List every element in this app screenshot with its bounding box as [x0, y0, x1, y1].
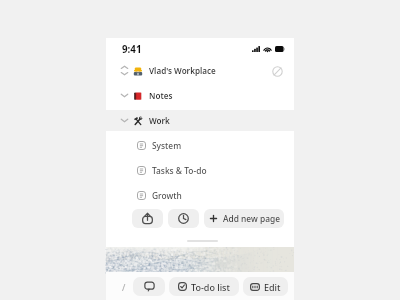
- staticText: 9:41: [122, 43, 142, 56]
- button[interactable]: History: [168, 209, 199, 228]
- staticText: System: [152, 140, 182, 151]
- staticText: Tasks & To-do: [152, 165, 207, 176]
- staticText: Vlad's Workplace: [149, 65, 216, 76]
- button[interactable]: Add new page: [204, 209, 284, 228]
- button[interactable]: Vlad's Workplace: [106, 58, 294, 83]
- staticText: Edit: [264, 281, 281, 293]
- staticText: /: [122, 281, 126, 292]
- button[interactable]: Tasks & To-do: [106, 158, 294, 183]
- staticText: Work: [149, 115, 170, 126]
- staticText: Notes: [149, 90, 173, 101]
- button[interactable]: To-do list: [169, 277, 239, 296]
- button[interactable]: Edit: [243, 277, 288, 296]
- button[interactable]: Work: [106, 108, 294, 133]
- button[interactable]: Notes: [106, 83, 294, 108]
- button[interactable]: Growth: [106, 183, 294, 208]
- button[interactable]: Slash command: [118, 281, 129, 292]
- staticText: Growth: [152, 190, 182, 201]
- button[interactable]: Comment: [133, 277, 165, 296]
- staticText: To-do list: [191, 281, 230, 293]
- button[interactable]: Hide: [270, 64, 284, 78]
- staticText: Add new page: [223, 213, 280, 224]
- button[interactable]: System: [106, 133, 294, 158]
- button[interactable]: Share: [132, 209, 163, 228]
